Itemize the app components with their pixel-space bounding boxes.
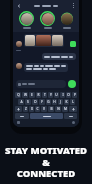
button[interactable]: N bbox=[55, 106, 61, 112]
button[interactable]: Y bbox=[48, 92, 53, 98]
button[interactable]: Voice input bbox=[72, 121, 75, 124]
button[interactable]: Send bbox=[68, 80, 76, 88]
button[interactable] bbox=[24, 34, 64, 47]
button[interactable]: Emoji bbox=[17, 121, 20, 124]
button[interactable]: E bbox=[29, 92, 35, 98]
button[interactable]: H bbox=[52, 99, 57, 105]
staticText: S bbox=[27, 100, 29, 104]
button[interactable]: Open story bbox=[19, 11, 34, 26]
staticText: STAY MOTIVATED & CONNECTED bbox=[2, 144, 90, 180]
button[interactable]: I bbox=[60, 92, 65, 98]
staticText: D bbox=[34, 100, 37, 104]
button[interactable]: J bbox=[58, 99, 63, 105]
staticText: G bbox=[47, 100, 50, 104]
staticText: L bbox=[72, 100, 74, 104]
button[interactable]: More options bbox=[70, 2, 77, 9]
button[interactable]: B bbox=[48, 106, 54, 112]
button[interactable]: D bbox=[32, 99, 38, 105]
button[interactable]: U bbox=[54, 92, 59, 98]
staticText: N bbox=[57, 107, 60, 111]
staticText: J bbox=[60, 100, 61, 104]
staticText: C bbox=[36, 107, 39, 111]
button[interactable]: Back bbox=[15, 2, 22, 9]
button[interactable]: V bbox=[41, 106, 47, 112]
button[interactable]: Open story bbox=[61, 11, 73, 26]
staticText: I bbox=[62, 93, 64, 97]
button[interactable]: Shift bbox=[15, 106, 22, 112]
staticText: T bbox=[44, 93, 46, 97]
staticText: M bbox=[64, 107, 67, 111]
staticText: E bbox=[31, 93, 33, 97]
staticText: H bbox=[53, 100, 56, 104]
button[interactable] bbox=[16, 80, 66, 88]
staticText: K bbox=[65, 100, 68, 104]
button[interactable]: Q bbox=[15, 92, 21, 98]
button[interactable]: O bbox=[66, 92, 71, 98]
staticText: Y bbox=[50, 93, 52, 97]
button[interactable]: W bbox=[22, 92, 28, 98]
staticText: Q bbox=[17, 93, 20, 97]
button[interactable]: F bbox=[39, 99, 45, 105]
button[interactable]: L bbox=[70, 99, 75, 105]
button[interactable]: A bbox=[18, 99, 24, 105]
staticText: U bbox=[55, 93, 58, 97]
button[interactable]: T bbox=[42, 92, 47, 98]
button[interactable]: Z bbox=[23, 106, 28, 112]
staticText: W bbox=[24, 93, 27, 97]
button[interactable]: Numbers bbox=[15, 113, 29, 119]
staticText: O bbox=[67, 93, 70, 97]
staticText: B bbox=[50, 107, 53, 111]
button[interactable]: K bbox=[64, 99, 69, 105]
staticText: X bbox=[31, 107, 33, 111]
button[interactable]: Return bbox=[64, 113, 77, 119]
button[interactable]: M bbox=[62, 106, 68, 112]
button[interactable]: P bbox=[72, 92, 77, 98]
staticText: Z bbox=[25, 107, 27, 111]
button[interactable]: R bbox=[36, 92, 41, 98]
staticText: A bbox=[20, 100, 23, 104]
button[interactable]: X bbox=[29, 106, 34, 112]
button[interactable]: S bbox=[25, 99, 31, 105]
staticText: R bbox=[37, 93, 40, 97]
button[interactable]: C bbox=[35, 106, 40, 112]
button[interactable]: Open story bbox=[40, 11, 55, 26]
staticText: F bbox=[41, 100, 43, 104]
staticText: V bbox=[43, 107, 45, 111]
button[interactable]: Backspace bbox=[69, 106, 77, 112]
staticText: P bbox=[74, 93, 76, 97]
button[interactable] bbox=[42, 53, 76, 60]
button[interactable] bbox=[24, 63, 68, 72]
button[interactable]: Space bbox=[30, 113, 63, 119]
button[interactable]: G bbox=[46, 99, 51, 105]
